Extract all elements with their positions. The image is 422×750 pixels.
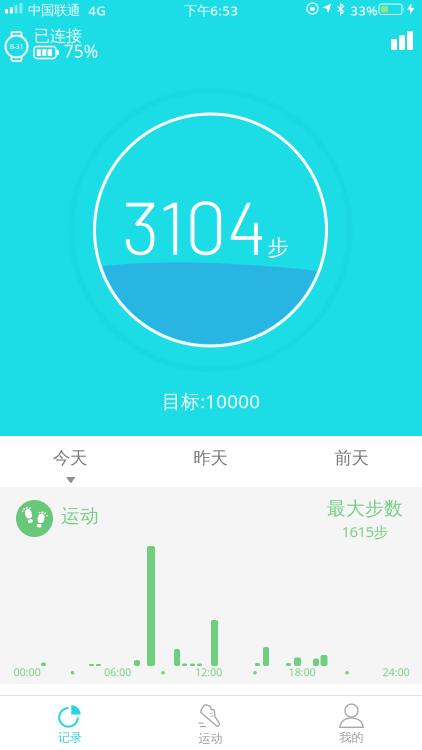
staticText: 24:00 <box>382 665 409 679</box>
staticText: 00:00 <box>13 665 40 679</box>
staticText: 33% <box>350 1 377 19</box>
staticText: 目标:10000 <box>162 388 260 413</box>
button[interactable]: 运动 <box>140 698 281 750</box>
button[interactable]: 统计 <box>391 31 413 50</box>
staticText: 前天 <box>334 447 368 469</box>
button[interactable]: 我的 <box>281 698 422 750</box>
staticText: 75% <box>63 39 97 62</box>
staticText: 1615步 <box>341 522 388 541</box>
staticText: 12:00 <box>195 665 222 679</box>
button[interactable]: 今天 <box>0 436 140 480</box>
button[interactable]: 记录 <box>0 698 140 750</box>
button[interactable]: 昨天 <box>140 436 281 480</box>
staticText: 最大步数 <box>327 497 403 520</box>
staticText: 06:00 <box>104 665 131 679</box>
staticText: B-31 <box>9 42 23 51</box>
staticText: 4G <box>88 1 106 19</box>
staticText: 运动 <box>198 731 222 746</box>
staticText: 3104 <box>121 180 266 270</box>
staticText: 昨天 <box>193 447 227 469</box>
staticText: 步 <box>267 234 288 261</box>
staticText: 18:00 <box>288 665 315 679</box>
staticText: 今天 <box>53 447 87 469</box>
staticText: 我的 <box>339 730 363 745</box>
staticText: 运动 <box>61 504 99 527</box>
button[interactable]: 前天 <box>281 436 422 480</box>
staticText: 记录 <box>58 730 82 745</box>
staticText: 中国联通 <box>28 2 80 18</box>
staticText: 已连接 <box>34 26 82 46</box>
staticText: 下午6:53 <box>184 1 238 19</box>
